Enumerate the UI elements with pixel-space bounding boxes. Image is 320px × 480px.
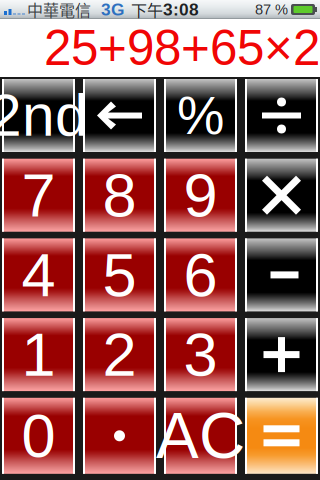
staticText: 下午 <box>131 0 163 21</box>
staticText: % <box>177 86 224 145</box>
button[interactable]: 2 <box>83 318 156 391</box>
button[interactable]: divide <box>245 79 318 152</box>
staticText: 2 <box>102 320 136 389</box>
button[interactable]: backspace <box>83 79 156 152</box>
button[interactable]: all clear <box>164 398 237 474</box>
staticText: 8 <box>102 161 136 229</box>
staticText: 3:08 <box>163 0 199 19</box>
staticText: 5 <box>102 241 136 309</box>
button[interactable]: 4 <box>2 238 75 311</box>
button[interactable]: 9 <box>164 159 237 232</box>
button[interactable]: decimal point <box>83 398 156 474</box>
staticText: 6 <box>183 241 217 309</box>
button[interactable]: plus <box>245 318 318 391</box>
button[interactable]: multiply <box>245 159 318 232</box>
staticText: 7 <box>21 161 55 229</box>
button[interactable]: 7 <box>2 159 75 232</box>
staticText: 3 <box>183 320 217 389</box>
staticText: 25+98+65×2 <box>44 20 320 75</box>
button[interactable]: 1 <box>2 318 75 391</box>
button[interactable]: 6 <box>164 238 237 311</box>
button[interactable]: 5 <box>83 238 156 311</box>
button[interactable]: second function <box>2 79 75 152</box>
button[interactable]: minus <box>245 238 318 311</box>
button[interactable]: 8 <box>83 159 156 232</box>
staticText: 0 <box>21 401 55 470</box>
staticText: 3G <box>91 0 124 19</box>
staticText: AC <box>156 400 245 472</box>
button[interactable]: 0 <box>2 398 75 474</box>
button[interactable]: percent <box>164 79 237 152</box>
button[interactable]: equals <box>245 398 318 474</box>
staticText: 2nd <box>0 83 88 148</box>
button[interactable]: 3 <box>164 318 237 391</box>
staticText: 1 <box>21 320 55 389</box>
staticText: 中華電信 <box>27 0 91 21</box>
staticText: 9 <box>183 161 217 229</box>
staticText: 4 <box>21 241 55 309</box>
staticText: 87 % <box>255 1 288 18</box>
